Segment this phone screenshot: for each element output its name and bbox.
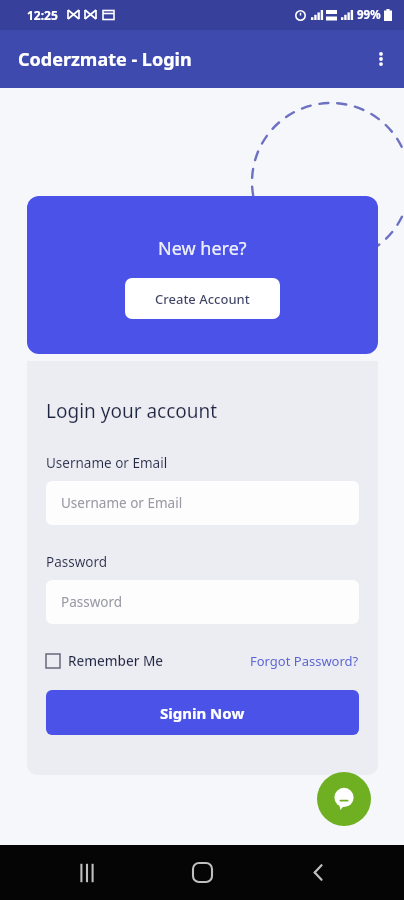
button[interactable]: Signin Now [46,690,359,735]
staticText: Password [46,553,108,571]
button[interactable]: Home [173,845,231,900]
staticText: 99% [357,7,381,23]
button[interactable]: Username or Email [46,481,359,525]
staticText: Forgot Password? [250,652,359,670]
button[interactable]: More options [358,36,404,82]
staticText: Username or Email [46,454,168,472]
staticText: Create Account [155,290,250,308]
staticText: Coderzmate - Login [18,47,192,72]
button[interactable]: Open chat [317,772,371,826]
staticText: Signin Now [160,703,245,723]
button[interactable]: Recents [58,845,116,900]
staticText: New here? [158,236,247,261]
staticText: Username or Email [61,494,183,512]
button[interactable]: Create Account [125,278,280,319]
button[interactable]: Password [46,580,359,624]
button[interactable]: Back [289,845,347,900]
staticText: Remember Me [68,652,164,670]
staticText: 12:25 [27,7,58,23]
button[interactable]: Remember Me [46,652,164,670]
button[interactable]: Forgot Password? [250,652,359,670]
staticText: Password [61,593,123,611]
staticText: Login your account [46,398,218,424]
